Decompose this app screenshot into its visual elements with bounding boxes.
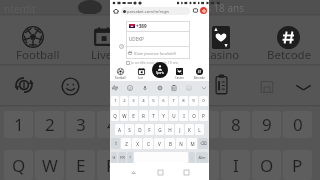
button[interactable]: Cashout — [14, 76, 34, 94]
button[interactable]: Back — [129, 168, 137, 176]
button[interactable]: Collapse — [294, 81, 313, 94]
staticText: 1 — [114, 98, 117, 104]
button[interactable]: Recents — [182, 168, 190, 176]
button[interactable]: G — [155, 124, 164, 135]
button[interactable]: 3 — [66, 111, 95, 138]
button[interactable]: J — [175, 124, 184, 135]
button[interactable]: Collapse keyboard — [201, 85, 207, 91]
button[interactable]: Select — [119, 44, 124, 49]
button[interactable]: Home — [112, 7, 120, 15]
button[interactable]: !# — [111, 152, 117, 163]
button[interactable]: Voice input — [142, 85, 148, 91]
button[interactable]: Je certifie avoir plus de 18 ans — [126, 60, 225, 65]
staticText: 7 — [172, 98, 175, 104]
button[interactable]: 4 — [97, 111, 126, 138]
button[interactable]: Live — [94, 27, 113, 46]
button[interactable]: 1 — [111, 96, 119, 106]
button[interactable]: Sports — [152, 62, 168, 78]
button[interactable]: M — [187, 138, 197, 149]
button[interactable]: K — [185, 124, 194, 135]
button[interactable]: N — [176, 138, 186, 149]
button[interactable]: W — [35, 150, 64, 180]
button[interactable]: 8 — [179, 96, 188, 106]
button[interactable]: X — [132, 138, 142, 149]
button[interactable]: W — [120, 110, 128, 121]
button[interactable]: ? — [127, 152, 133, 163]
button[interactable]: Live — [135, 68, 147, 80]
button[interactable]: parvabet.com/m/regis — [121, 7, 190, 15]
button[interactable]: Clipboard — [171, 85, 177, 91]
button[interactable]: 7 — [169, 96, 178, 106]
button[interactable]: T — [149, 110, 158, 121]
button[interactable]: O — [189, 110, 198, 121]
button[interactable]: Casino — [173, 68, 185, 80]
button[interactable]: ⌫ — [198, 138, 208, 149]
button[interactable]: I — [179, 110, 188, 121]
button[interactable]: Settings — [157, 85, 163, 91]
button[interactable]: D — [135, 124, 144, 135]
button[interactable]: 9 — [189, 96, 198, 106]
button[interactable]: +389 — [126, 21, 190, 31]
button[interactable]: Cashout — [112, 85, 118, 91]
button[interactable]: Z — [121, 138, 131, 149]
button[interactable]: Tabs — [192, 7, 199, 14]
button[interactable]: 0 — [199, 96, 208, 106]
button[interactable]: R — [97, 150, 126, 180]
button[interactable]: 5 — [128, 111, 157, 138]
button[interactable]: 2 — [120, 96, 128, 106]
button[interactable]: Football — [114, 68, 126, 80]
button[interactable]: Emoji — [127, 85, 133, 91]
button[interactable]: T — [128, 150, 157, 180]
button[interactable]: A — [115, 124, 124, 135]
button[interactable]: (Date jeunesse facultatif) — [126, 47, 190, 59]
button[interactable]: Q — [4, 150, 33, 180]
button[interactable]: 6 — [159, 111, 188, 138]
button[interactable]: 3 — [129, 96, 138, 106]
button[interactable]: Y — [159, 110, 168, 121]
button[interactable]: Home — [156, 168, 164, 176]
button[interactable]: More — [186, 85, 192, 91]
button[interactable]: Football — [22, 26, 44, 48]
button[interactable]: P — [199, 110, 208, 121]
button[interactable]: 6 — [159, 96, 168, 106]
button[interactable]: E — [129, 110, 138, 121]
button[interactable]: 2 — [35, 111, 64, 138]
button[interactable]: S — [125, 124, 134, 135]
button[interactable]: P — [283, 150, 312, 180]
button[interactable]: L — [195, 124, 204, 135]
button[interactable]: Betcode — [277, 26, 300, 49]
button[interactable]: 7 — [190, 111, 219, 138]
button[interactable]: I — [221, 150, 250, 180]
button[interactable]: Betcode — [193, 68, 205, 80]
button[interactable]: Save — [259, 79, 275, 95]
button[interactable]: Y — [159, 150, 188, 180]
button[interactable]: Aller — [196, 152, 208, 163]
button[interactable]: Menu — [200, 7, 207, 14]
button[interactable]: Casino — [212, 26, 230, 49]
staticText: O — [192, 113, 196, 119]
button[interactable]: FR — [118, 152, 126, 163]
button[interactable]: Clipboard — [214, 74, 229, 95]
button[interactable]: Emoji — [61, 77, 80, 96]
button[interactable]: E — [66, 150, 95, 180]
button[interactable]: 4 — [139, 96, 148, 106]
button[interactable]: 5 — [149, 96, 158, 106]
button[interactable]: C — [143, 138, 153, 149]
button[interactable]: O — [252, 150, 281, 180]
button[interactable]: 1 — [4, 111, 33, 138]
button[interactable]: R — [139, 110, 148, 121]
button[interactable]: B — [165, 138, 175, 149]
button[interactable]: V — [154, 138, 164, 149]
button[interactable]: F — [145, 124, 154, 135]
button[interactable]: 0 — [283, 111, 312, 138]
button[interactable]: ⇧ — [111, 138, 120, 149]
button[interactable]: U — [169, 110, 178, 121]
button[interactable]: Q — [111, 110, 119, 121]
button[interactable]: U — [190, 150, 219, 180]
button[interactable]: 8 — [221, 111, 250, 138]
button[interactable]: H — [165, 124, 174, 135]
button[interactable]: 9 — [252, 111, 281, 138]
button[interactable]: UDEKP — [126, 32, 190, 46]
